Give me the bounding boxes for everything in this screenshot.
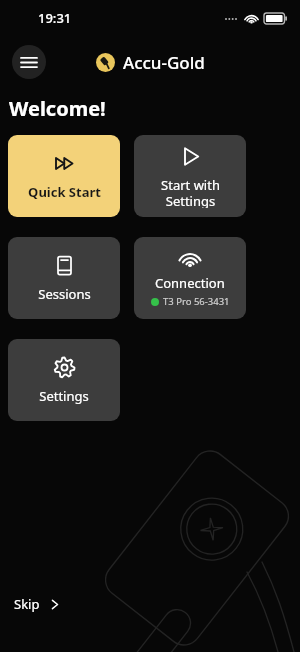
- staticText: T3 Pro 56-3431: [163, 295, 230, 308]
- button[interactable]: Settings: [8, 339, 120, 421]
- staticText: Skip: [14, 595, 40, 613]
- staticText: Sessions: [38, 285, 91, 303]
- staticText: Accu-Gold: [123, 51, 205, 74]
- button[interactable]: Menu: [12, 45, 46, 79]
- staticText: Quick Start: [28, 183, 101, 201]
- button[interactable]: Skip: [8, 590, 65, 618]
- staticText: Welcome!: [9, 95, 106, 122]
- button[interactable]: Connection T3 Pro 56-3431: [134, 237, 246, 319]
- staticText: Connection: [155, 274, 225, 292]
- staticText: Start with Settings: [161, 176, 220, 208]
- staticText: 19:31: [38, 9, 72, 27]
- staticText: Settings: [39, 387, 89, 405]
- button[interactable]: Quick Start: [8, 135, 120, 217]
- button[interactable]: Start with Settings: [134, 135, 246, 217]
- button[interactable]: Sessions: [8, 237, 120, 319]
